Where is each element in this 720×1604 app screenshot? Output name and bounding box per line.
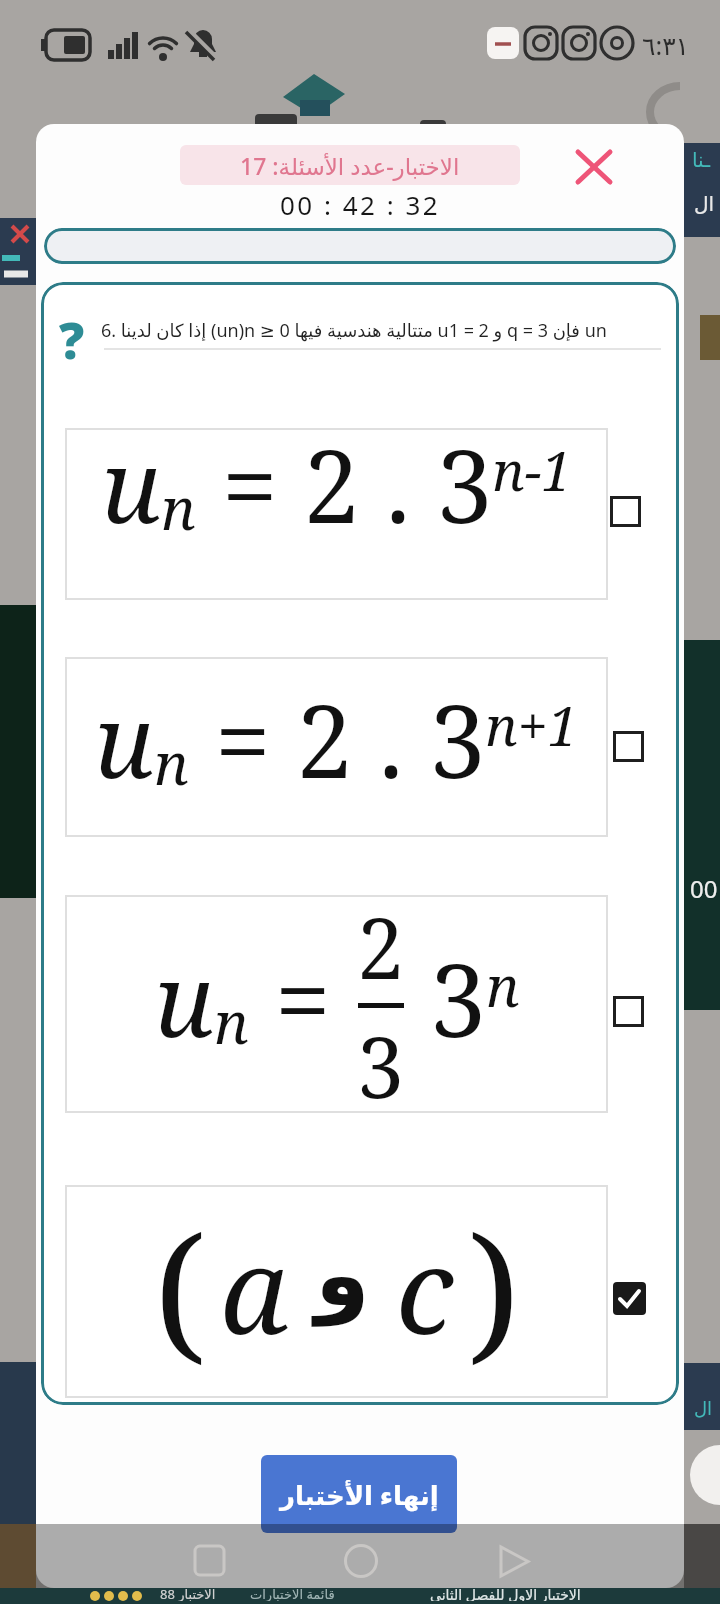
button[interactable] bbox=[185, 1538, 235, 1584]
staticText: un = 2 . 3n−1 bbox=[101, 416, 572, 552]
staticText: إنهاء الأختبار bbox=[280, 1477, 439, 1512]
staticText: ( bbox=[154, 1186, 206, 1390]
button[interactable]: un = 2 . 3n−1 bbox=[65, 428, 608, 600]
staticText: ? bbox=[59, 306, 85, 374]
staticText: 3 bbox=[357, 1008, 404, 1107]
button[interactable] bbox=[490, 1538, 540, 1584]
staticText: 2 bbox=[357, 889, 404, 1003]
staticText: الاختبار الاول للفصل الثاني bbox=[430, 1585, 581, 1601]
staticText: و bbox=[315, 1223, 370, 1325]
button[interactable] bbox=[613, 1282, 646, 1315]
staticText: un = 2 . 3n+1 bbox=[94, 671, 579, 807]
staticText: ) bbox=[468, 1186, 520, 1390]
button[interactable]: ( bbox=[65, 1185, 608, 1398]
staticText: ال bbox=[694, 1398, 713, 1419]
staticText: 00 bbox=[690, 872, 718, 905]
button[interactable] bbox=[610, 496, 641, 527]
staticText: الاختبار 88 bbox=[160, 1585, 216, 1601]
staticText: ال bbox=[694, 192, 715, 215]
staticText: a bbox=[220, 1208, 289, 1369]
button[interactable] bbox=[613, 996, 644, 1027]
button[interactable] bbox=[613, 731, 644, 762]
staticText: الاختبار-عدد الأسئلة: 17 bbox=[240, 150, 460, 181]
button[interactable]: un = bbox=[65, 895, 608, 1113]
staticText: 6. إذا كان لدينا (un)n ≥ 0 متتالية هندسي… bbox=[101, 318, 661, 343]
staticText: قائمة الاختبارات bbox=[250, 1585, 335, 1601]
staticText: c bbox=[396, 1208, 454, 1369]
staticText: 00 : 42 : 32 bbox=[280, 187, 441, 222]
button[interactable] bbox=[566, 142, 622, 190]
button[interactable]: un = 2 . 3n+1 bbox=[65, 657, 608, 837]
staticText: 3n bbox=[404, 930, 520, 1066]
button[interactable]: إنهاء الأختبار bbox=[261, 1455, 457, 1533]
staticText: ٦:٣١ bbox=[642, 28, 689, 62]
staticText: ـنا bbox=[692, 148, 710, 171]
button[interactable] bbox=[336, 1538, 386, 1584]
staticText: un = bbox=[154, 930, 357, 1066]
